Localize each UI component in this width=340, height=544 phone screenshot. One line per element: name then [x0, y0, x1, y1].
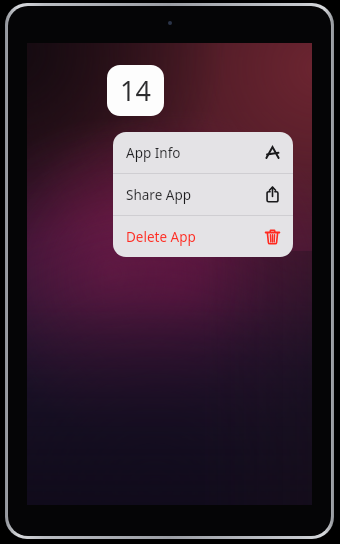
button[interactable]: Delete App [113, 216, 293, 257]
staticText: Delete App [126, 228, 196, 246]
staticText: App Info [126, 144, 181, 162]
other: App Info [264, 144, 281, 161]
button[interactable]: 14 [107, 65, 164, 116]
button[interactable]: Share App [113, 174, 293, 215]
button[interactable]: App Info [113, 132, 293, 173]
other: Delete App [264, 228, 281, 245]
other: Share App [264, 186, 281, 203]
staticText: Share App [126, 186, 191, 204]
staticText: 14 [120, 72, 151, 109]
